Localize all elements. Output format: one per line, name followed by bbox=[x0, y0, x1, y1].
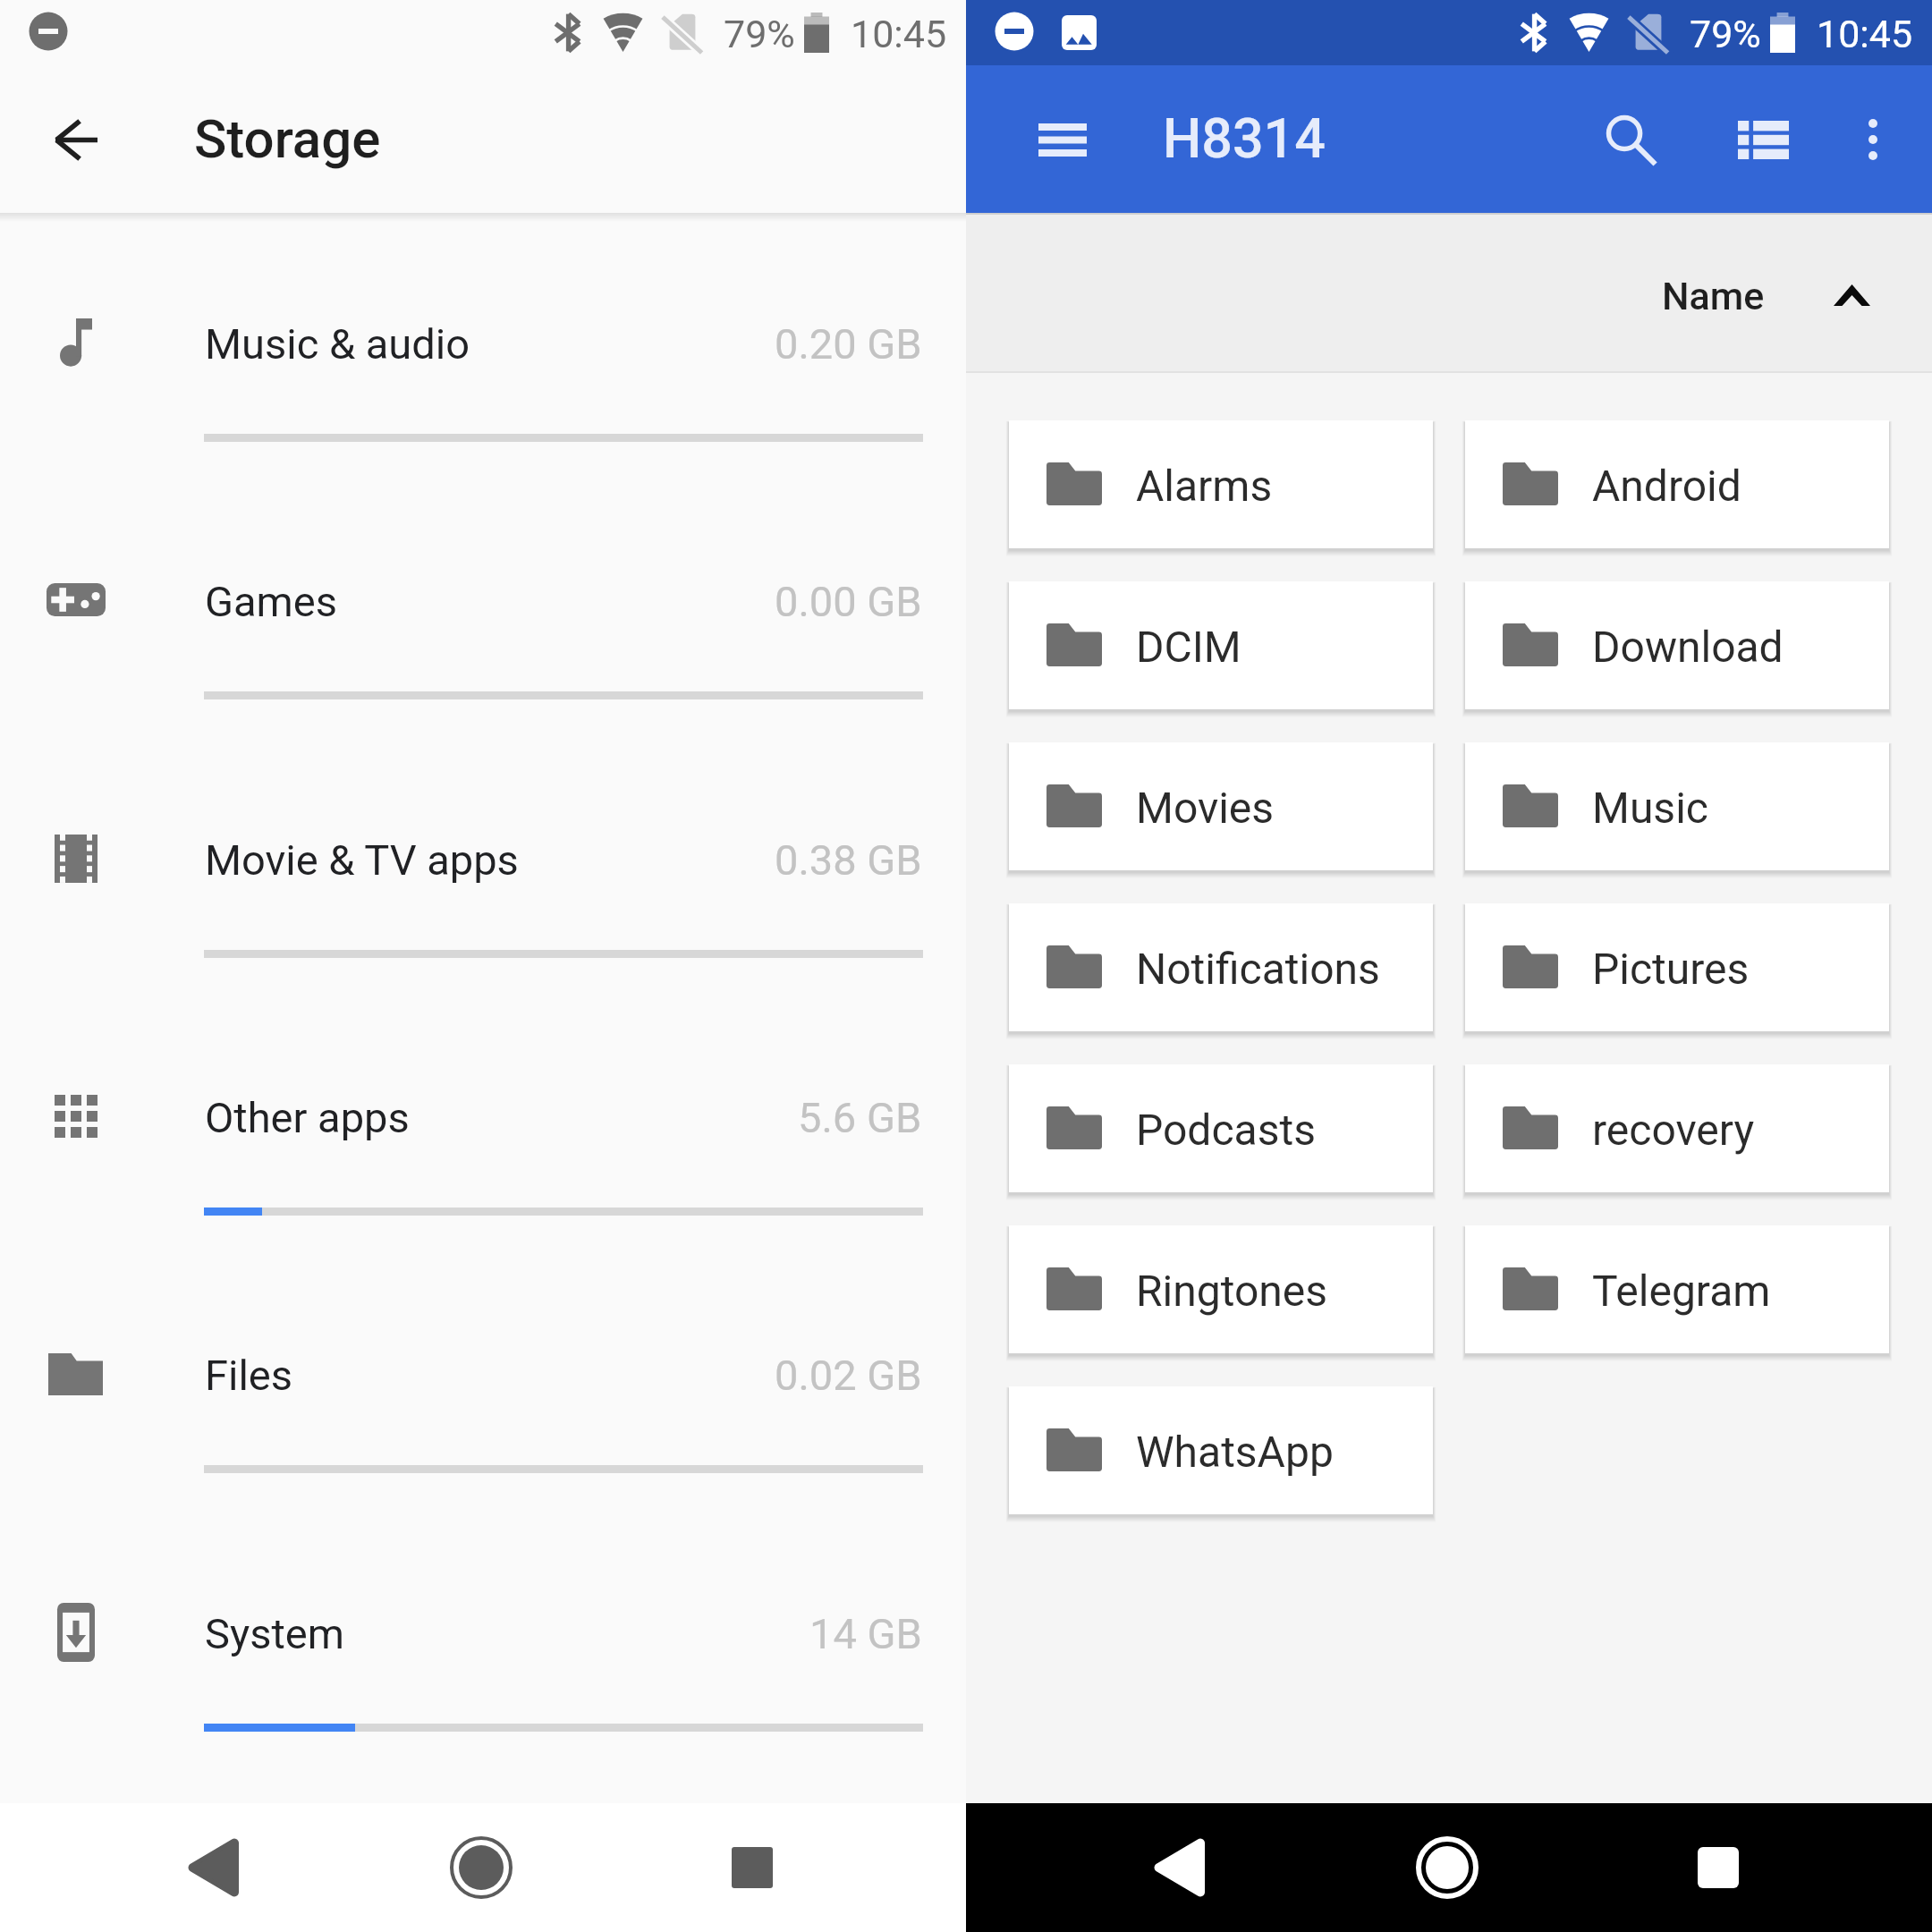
button[interactable]: Music & audio bbox=[0, 216, 966, 473]
staticText: Pictures bbox=[1592, 944, 1750, 994]
button[interactable]: Back bbox=[1114, 1803, 1243, 1932]
staticText: 10:45 bbox=[1817, 12, 1913, 56]
button[interactable]: Pictures bbox=[1465, 903, 1889, 1031]
staticText: Music bbox=[1592, 783, 1708, 833]
button[interactable]: Back bbox=[148, 1803, 277, 1932]
staticText: Other apps bbox=[205, 1093, 410, 1142]
button[interactable]: More options bbox=[1823, 89, 1923, 190]
staticText: 0.00 GB bbox=[775, 577, 922, 626]
button[interactable]: Recent apps bbox=[688, 1803, 817, 1932]
button[interactable]: Files bbox=[0, 1247, 966, 1504]
button[interactable]: recovery bbox=[1465, 1064, 1889, 1192]
staticText: Android bbox=[1592, 461, 1741, 511]
button[interactable]: Movie & TV apps bbox=[0, 732, 966, 989]
staticText: 0.38 GB bbox=[775, 835, 922, 885]
staticText: Files bbox=[205, 1351, 293, 1400]
button[interactable]: DCIM bbox=[1009, 581, 1433, 709]
button[interactable]: Home bbox=[417, 1803, 546, 1932]
staticText: H8314 bbox=[1163, 106, 1326, 170]
button[interactable]: Movies bbox=[1009, 742, 1433, 870]
staticText: 79% bbox=[1690, 12, 1761, 56]
staticText: 79% bbox=[724, 12, 795, 56]
button[interactable]: Alarms bbox=[1009, 420, 1433, 548]
button[interactable]: Download bbox=[1465, 581, 1889, 709]
staticText: Movies bbox=[1136, 783, 1275, 833]
staticText: 0.02 GB bbox=[775, 1351, 922, 1400]
staticText: System bbox=[205, 1609, 344, 1658]
button[interactable]: Search bbox=[1580, 89, 1680, 190]
staticText: 5.6 GB bbox=[798, 1093, 922, 1142]
button[interactable]: Notifications bbox=[1009, 903, 1433, 1031]
button[interactable]: Telegram bbox=[1465, 1225, 1889, 1353]
staticText: Ringtones bbox=[1136, 1266, 1328, 1316]
staticText: Storage bbox=[194, 107, 381, 170]
staticText: WhatsApp bbox=[1136, 1427, 1334, 1477]
button[interactable]: Switch view bbox=[1713, 89, 1813, 190]
button[interactable]: Home bbox=[1383, 1803, 1512, 1932]
staticText: Name bbox=[1662, 274, 1765, 318]
staticText: Alarms bbox=[1136, 461, 1273, 511]
staticText: 14 GB bbox=[809, 1609, 922, 1658]
staticText: recovery bbox=[1592, 1105, 1755, 1155]
button[interactable]: Back bbox=[26, 89, 126, 190]
button[interactable]: Games bbox=[0, 473, 966, 731]
staticText: 0.20 GB bbox=[775, 319, 922, 369]
staticText: Movie & TV apps bbox=[205, 835, 519, 885]
button[interactable]: System bbox=[0, 1505, 966, 1763]
staticText: 10:45 bbox=[851, 12, 947, 56]
staticText: Telegram bbox=[1592, 1266, 1771, 1316]
button[interactable]: WhatsApp bbox=[1009, 1386, 1433, 1514]
button[interactable]: Navigation menu bbox=[1013, 89, 1113, 190]
button[interactable]: Name bbox=[1646, 215, 1914, 373]
staticText: Games bbox=[205, 577, 337, 626]
button[interactable]: Ringtones bbox=[1009, 1225, 1433, 1353]
staticText: Notifications bbox=[1136, 944, 1380, 994]
button[interactable]: Music bbox=[1465, 742, 1889, 870]
staticText: Music & audio bbox=[205, 319, 470, 369]
staticText: Podcasts bbox=[1136, 1105, 1316, 1155]
button[interactable]: Recent apps bbox=[1654, 1803, 1783, 1932]
staticText: Download bbox=[1592, 622, 1784, 672]
button[interactable]: Podcasts bbox=[1009, 1064, 1433, 1192]
staticText: DCIM bbox=[1136, 622, 1241, 672]
button[interactable]: Other apps bbox=[0, 989, 966, 1247]
button[interactable]: Android bbox=[1465, 420, 1889, 548]
